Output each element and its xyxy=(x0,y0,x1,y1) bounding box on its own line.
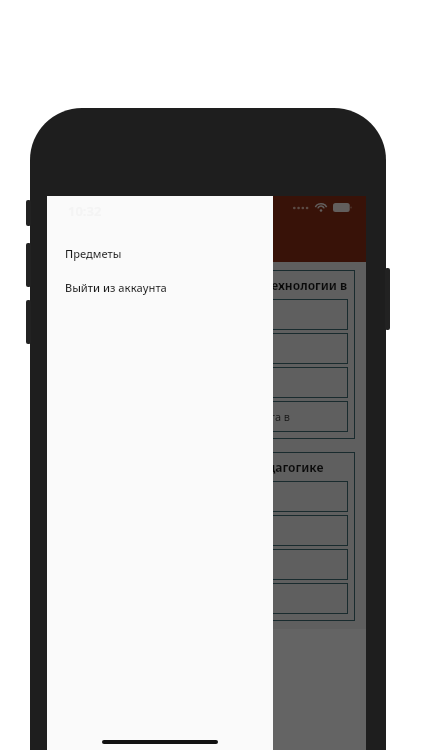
button[interactable]: Лекции и круглый стол xyxy=(65,481,348,512)
button[interactable]: Организация работы с детьми в xyxy=(65,515,348,546)
staticText: Предметы xyxy=(65,246,122,261)
button[interactable]: Предметы xyxy=(47,236,273,270)
button[interactable]: Выйти из аккаунта xyxy=(47,270,273,304)
staticText: Разработка тематического микросайта в xyxy=(72,409,291,424)
button[interactable]: Методические материалы xyxy=(65,299,348,330)
staticText: Выйти из аккаунта xyxy=(65,280,167,295)
button[interactable]: Введение в специальность по педагогике xyxy=(58,452,355,621)
button[interactable]: Разработка тематического микросайта в xyxy=(65,401,348,432)
button[interactable]: Электронный дневник вожатого xyxy=(65,367,348,398)
button[interactable]: Практические задания xyxy=(65,333,348,364)
button[interactable]: Электронный дневник вожатого xyxy=(65,583,348,614)
staticText: Применение информационных технологии в xyxy=(65,277,348,293)
button[interactable]: Применение информационных технологии в xyxy=(58,270,355,439)
staticText: Введение в специальность по педагогике xyxy=(65,459,324,475)
button[interactable]: Итоговая аттестация xyxy=(65,549,348,580)
